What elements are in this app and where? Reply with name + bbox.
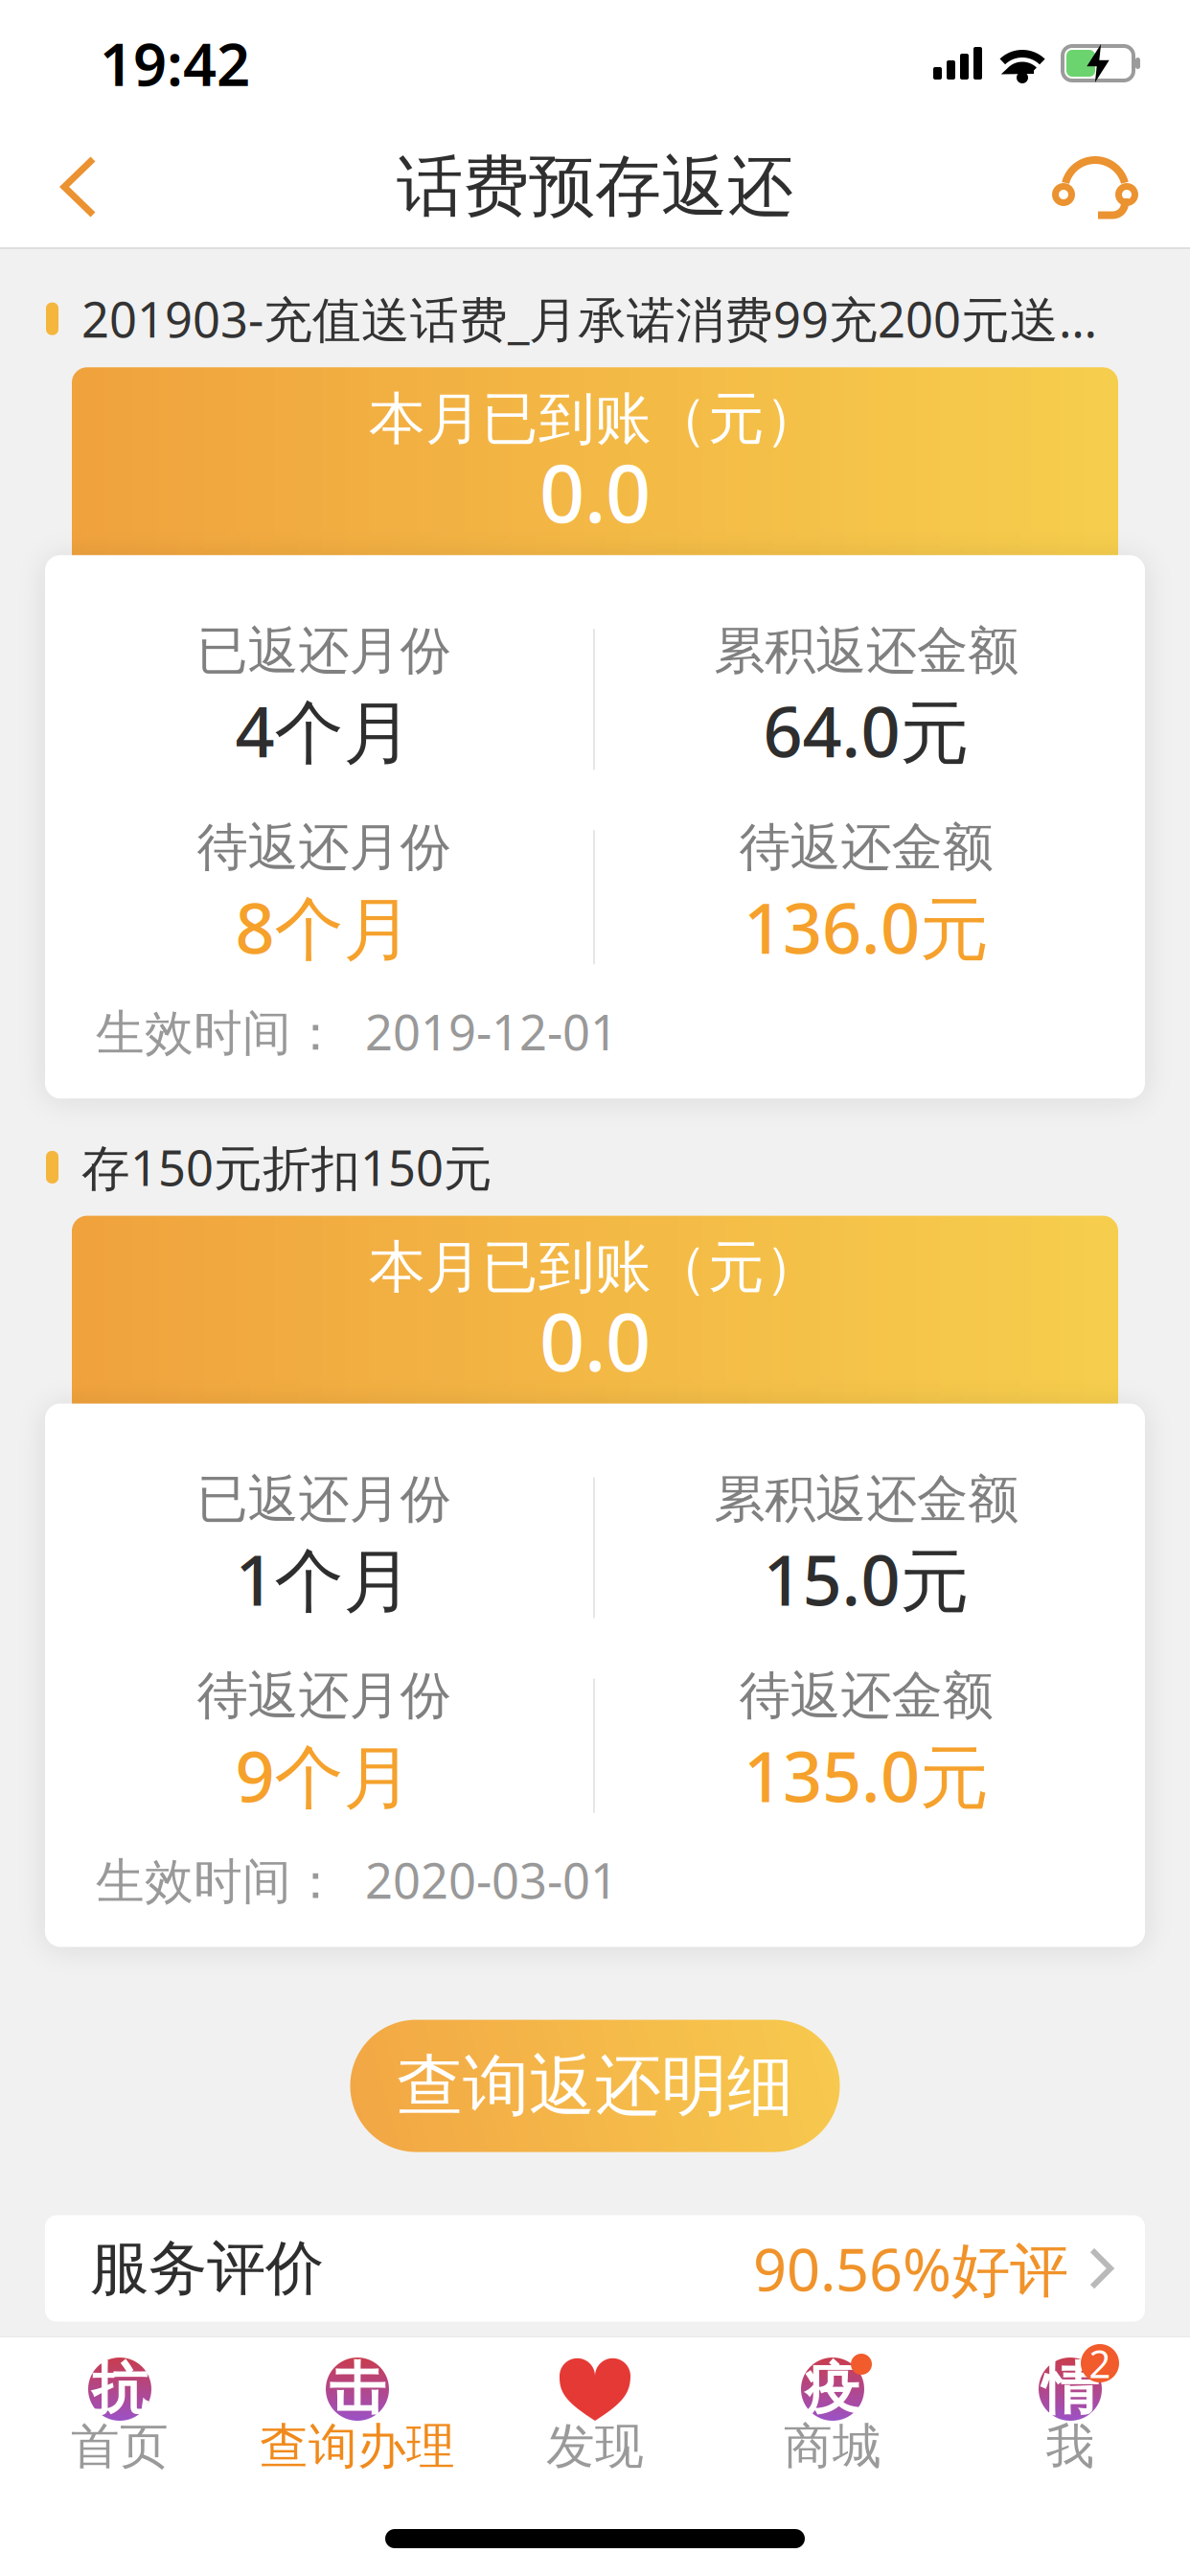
staticText: 201903-充值送话费_月承诺消费99充200元送200元分… xyxy=(81,287,1119,351)
staticText: 9个月 xyxy=(235,1730,412,1821)
staticText: 0.0 xyxy=(539,439,651,545)
staticText: 累积返还金额 xyxy=(714,1468,1018,1531)
staticText: 本月已到账（元） xyxy=(369,385,821,454)
staticText: 生效时间： 2019-12-01 xyxy=(96,999,618,1064)
staticText: 待返还月份 xyxy=(197,816,451,879)
staticText: 抗 xyxy=(92,2355,148,2424)
staticText: 4个月 xyxy=(235,685,412,776)
staticText: 发现 xyxy=(546,2417,644,2476)
button[interactable]: 情 xyxy=(951,2357,1189,2472)
staticText: 待返还金额 xyxy=(739,816,993,879)
staticText: 存150元折扣150元 xyxy=(81,1135,492,1199)
staticText: 商城 xyxy=(784,2417,881,2476)
staticText: 1个月 xyxy=(235,1533,412,1625)
staticText: 累积返还金额 xyxy=(714,620,1018,682)
staticText: 首页 xyxy=(71,2417,169,2476)
staticText: 2 xyxy=(1089,2338,1111,2389)
staticText: 8个月 xyxy=(235,881,412,973)
staticText: 135.0元 xyxy=(744,1730,989,1821)
button[interactable]: Customer service xyxy=(1054,126,1190,248)
button[interactable]: 查询返还明细 xyxy=(350,2020,840,2152)
staticText: 查询办理 xyxy=(260,2417,455,2476)
staticText: 90.56%好评 xyxy=(753,2229,1068,2307)
staticText: 15.0元 xyxy=(763,1533,969,1625)
staticText: 19:42 xyxy=(100,24,250,102)
button[interactable]: 抗 xyxy=(1,2357,239,2472)
staticText: 0.0 xyxy=(539,1288,651,1393)
staticText: 我 xyxy=(1046,2417,1095,2476)
staticText: 服务评价 xyxy=(90,2232,324,2305)
staticText: 情 xyxy=(1042,2355,1098,2424)
staticText: 击 xyxy=(329,2355,386,2424)
button[interactable]: 服务评价 xyxy=(0,2215,1190,2322)
button[interactable]: 击 xyxy=(239,2357,476,2472)
staticText: 疫 xyxy=(804,2355,861,2424)
button[interactable]: Back xyxy=(0,128,96,245)
staticText: 待返还金额 xyxy=(739,1664,993,1727)
button[interactable]: 发现 xyxy=(476,2357,714,2472)
staticText: 生效时间： 2020-03-01 xyxy=(96,1848,618,1912)
staticText: 已返还月份 xyxy=(197,1468,451,1531)
staticText: 64.0元 xyxy=(763,685,969,776)
staticText: 136.0元 xyxy=(744,881,989,973)
staticText: 待返还月份 xyxy=(197,1664,451,1727)
staticText: 查询返还明细 xyxy=(397,2045,793,2127)
staticText: 已返还月份 xyxy=(197,620,451,682)
staticText: 话费预存返还 xyxy=(397,146,793,228)
button[interactable]: 疫 xyxy=(714,2357,951,2472)
staticText: 本月已到账（元） xyxy=(369,1233,821,1302)
